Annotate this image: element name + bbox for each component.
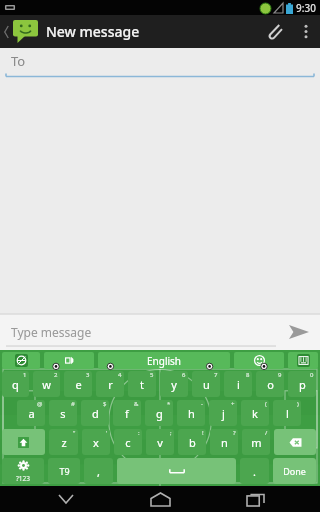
staticText: q: [12, 377, 19, 392]
button[interactable]: +: [209, 400, 237, 426]
button[interactable]: Attach: [256, 15, 292, 48]
staticText: ,: [97, 464, 100, 479]
button[interactable]: ": [49, 429, 78, 455]
staticText: T9: [59, 465, 70, 477]
button[interactable]: !: [178, 429, 206, 455]
button[interactable]: .: [240, 458, 269, 484]
button[interactable]: 1: [2, 371, 29, 397]
staticText: 9:30: [296, 1, 316, 15]
staticText: 3: [86, 371, 90, 379]
staticText: +: [231, 400, 235, 408]
button[interactable]: Voice input: [2, 352, 40, 369]
staticText: New message: [46, 22, 140, 41]
staticText: w: [42, 377, 51, 392]
staticText: $: [103, 400, 107, 408]
button[interactable]: Backspace: [274, 429, 316, 455]
button[interactable]: Microphone: [44, 352, 94, 369]
button[interactable]: 7: [192, 371, 220, 397]
button[interactable]: Hide keyboard: [37, 486, 95, 512]
staticText: ?: [233, 429, 236, 437]
button[interactable]: More options: [292, 15, 320, 48]
staticText: &: [134, 400, 139, 408]
button[interactable]: Space: [117, 458, 236, 484]
staticText: *: [167, 400, 171, 408]
button[interactable]: 9: [256, 371, 284, 397]
button[interactable]: ): [273, 400, 301, 426]
staticText: ): [297, 400, 299, 408]
staticText: 5: [150, 371, 154, 379]
staticText: s: [60, 406, 66, 421]
staticText: p: [299, 377, 306, 392]
button[interactable]: ': [82, 429, 110, 455]
button[interactable]: $: [81, 400, 109, 426]
staticText: n: [221, 435, 228, 450]
staticText: .: [253, 464, 256, 479]
button[interactable]: Home: [131, 486, 189, 512]
staticText: 1: [23, 371, 27, 379]
staticText: k: [252, 406, 258, 421]
staticText: !: [202, 429, 204, 437]
button[interactable]: Emoji: [234, 352, 284, 369]
button[interactable]: &: [113, 400, 141, 426]
staticText: i: [237, 377, 240, 392]
button[interactable]: *: [145, 400, 173, 426]
staticText: 0: [310, 371, 314, 379]
staticText: @: [37, 400, 43, 408]
button[interactable]: To: [0, 48, 320, 78]
staticText: To: [11, 52, 26, 70]
staticText: f: [125, 406, 129, 421]
button[interactable]: Done: [273, 458, 316, 484]
button[interactable]: ?: [210, 429, 238, 455]
button[interactable]: Keyboard settings: [288, 352, 318, 369]
staticText: ": [73, 429, 76, 437]
staticText: Done: [283, 465, 306, 477]
staticText: m: [251, 435, 262, 450]
staticText: 4: [118, 371, 122, 379]
button[interactable]: #: [49, 400, 77, 426]
button[interactable]: ;: [146, 429, 174, 455]
button[interactable]: -: [177, 400, 205, 426]
staticText: d: [92, 406, 99, 421]
button[interactable]: Recent apps: [226, 486, 284, 512]
button[interactable]: 8: [224, 371, 252, 397]
button[interactable]: Type message: [0, 317, 278, 347]
staticText: v: [157, 435, 163, 450]
button[interactable]: 2: [33, 371, 60, 397]
button[interactable]: ,: [84, 458, 113, 484]
staticText: o: [267, 377, 274, 392]
staticText: h: [188, 406, 195, 421]
staticText: u: [203, 377, 210, 392]
button[interactable]: Symbols and settings: [2, 458, 44, 484]
staticText: e: [75, 377, 82, 392]
staticText: #: [71, 400, 75, 408]
staticText: j: [222, 406, 225, 421]
button[interactable]: (: [241, 400, 269, 426]
staticText: -: [201, 400, 203, 408]
staticText: b: [189, 435, 196, 450]
staticText: English: [147, 354, 182, 368]
button[interactable]: 0: [288, 371, 316, 397]
button[interactable]: @: [17, 400, 45, 426]
button[interactable]: 3: [64, 371, 92, 397]
button[interactable]: Send: [278, 314, 320, 350]
button[interactable]: /: [242, 429, 270, 455]
staticText: 7: [214, 371, 218, 379]
staticText: 9: [278, 371, 282, 379]
button[interactable]: T9: [48, 458, 80, 484]
staticText: t: [140, 377, 144, 392]
button[interactable]: Shift: [2, 429, 45, 455]
staticText: g: [156, 406, 163, 421]
staticText: ': [106, 429, 108, 437]
staticText: y: [171, 377, 177, 392]
staticText: ;: [170, 429, 172, 437]
button[interactable]: English: [98, 352, 230, 369]
button[interactable]: 5: [128, 371, 156, 397]
button[interactable]: 6: [160, 371, 188, 397]
staticText: x: [93, 435, 99, 450]
staticText: ?123: [16, 474, 30, 483]
button[interactable]: 4: [96, 371, 124, 397]
button[interactable]: :: [114, 429, 142, 455]
staticText: 6: [182, 371, 186, 379]
button[interactable]: Back: [0, 20, 40, 43]
staticText: 2: [54, 371, 58, 379]
